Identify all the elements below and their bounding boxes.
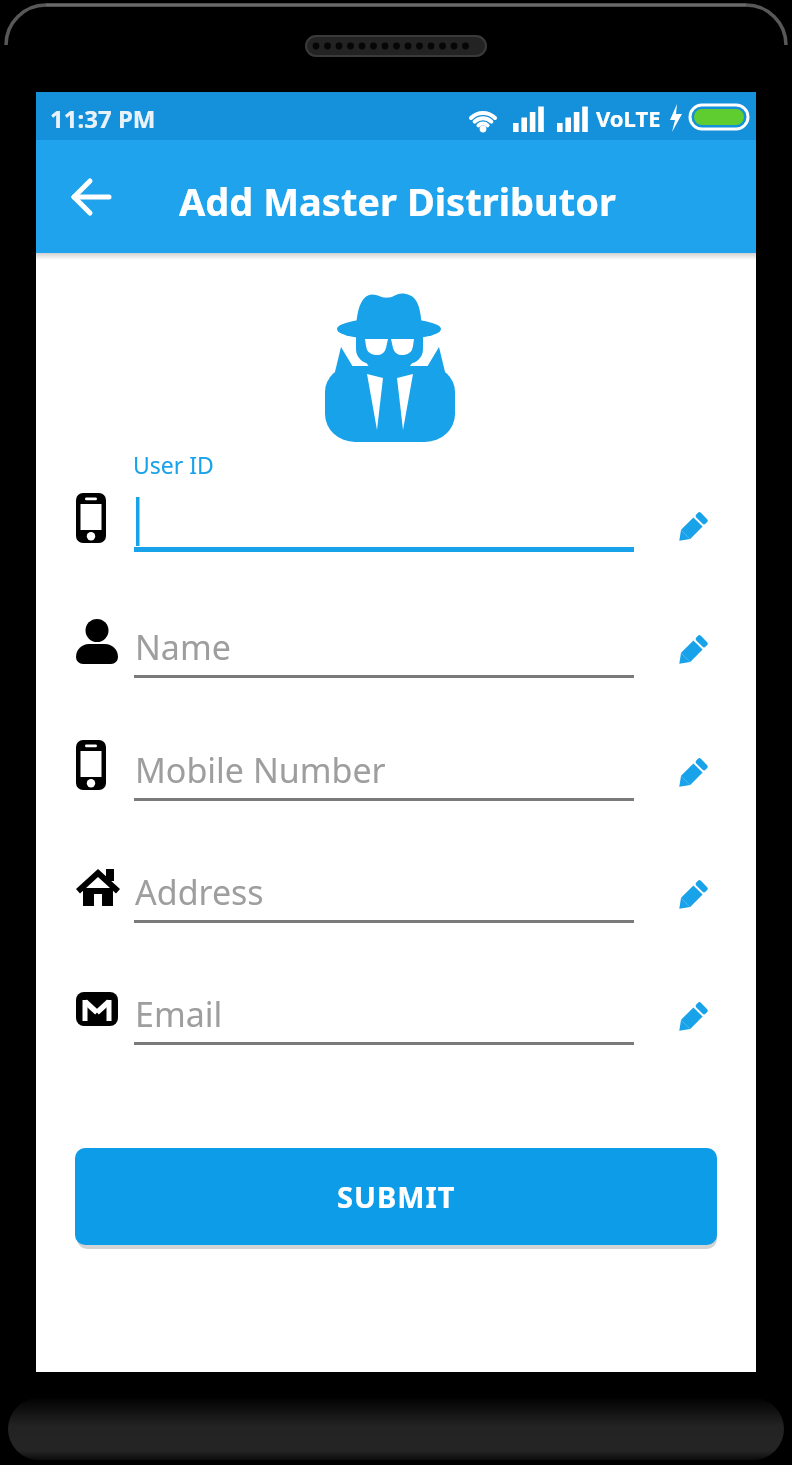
staticText: Email — [135, 991, 223, 1037]
button[interactable]: Name — [66, 611, 726, 689]
button[interactable] — [672, 754, 712, 794]
staticText: User ID — [133, 449, 214, 480]
button[interactable]: Address — [66, 856, 726, 934]
button[interactable] — [66, 171, 118, 223]
button[interactable]: Email — [66, 978, 726, 1056]
button[interactable] — [672, 876, 712, 916]
button[interactable] — [672, 998, 712, 1038]
staticText: SUBMIT — [337, 1177, 456, 1216]
button[interactable] — [672, 508, 712, 548]
staticText: 11:37 PM — [50, 102, 156, 135]
button[interactable]: Mobile Number — [66, 734, 726, 812]
button[interactable] — [672, 631, 712, 671]
staticText: Address — [135, 869, 264, 915]
button[interactable] — [66, 484, 726, 562]
staticText: Name — [135, 624, 231, 670]
staticText: Add Master Distributor — [179, 175, 616, 227]
staticText: VoLTE — [596, 103, 661, 133]
staticText: Mobile Number — [135, 747, 386, 793]
button[interactable]: SUBMIT — [75, 1148, 717, 1245]
